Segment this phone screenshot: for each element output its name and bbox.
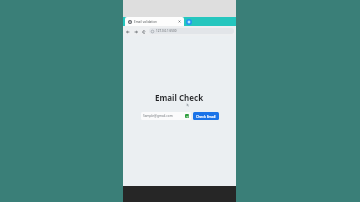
button[interactable]: Forward (133, 29, 138, 34)
button[interactable]: Check Email (193, 112, 219, 120)
staticText: 127.0.0.1:5500 (156, 29, 177, 33)
staticText: Check Email (196, 114, 216, 119)
button[interactable]: Email validation (125, 17, 184, 26)
button[interactable]: New tab (186, 19, 192, 25)
button[interactable]: Reload (141, 29, 146, 34)
button[interactable]: 127.0.0.1:5500 (149, 28, 234, 34)
button[interactable]: Sample@gmail.com (141, 112, 191, 120)
staticText: Email Check (155, 92, 204, 103)
staticText: Sample@gmail.com (143, 114, 185, 118)
staticText: Email validation (134, 20, 178, 24)
button[interactable]: Back (125, 29, 130, 34)
